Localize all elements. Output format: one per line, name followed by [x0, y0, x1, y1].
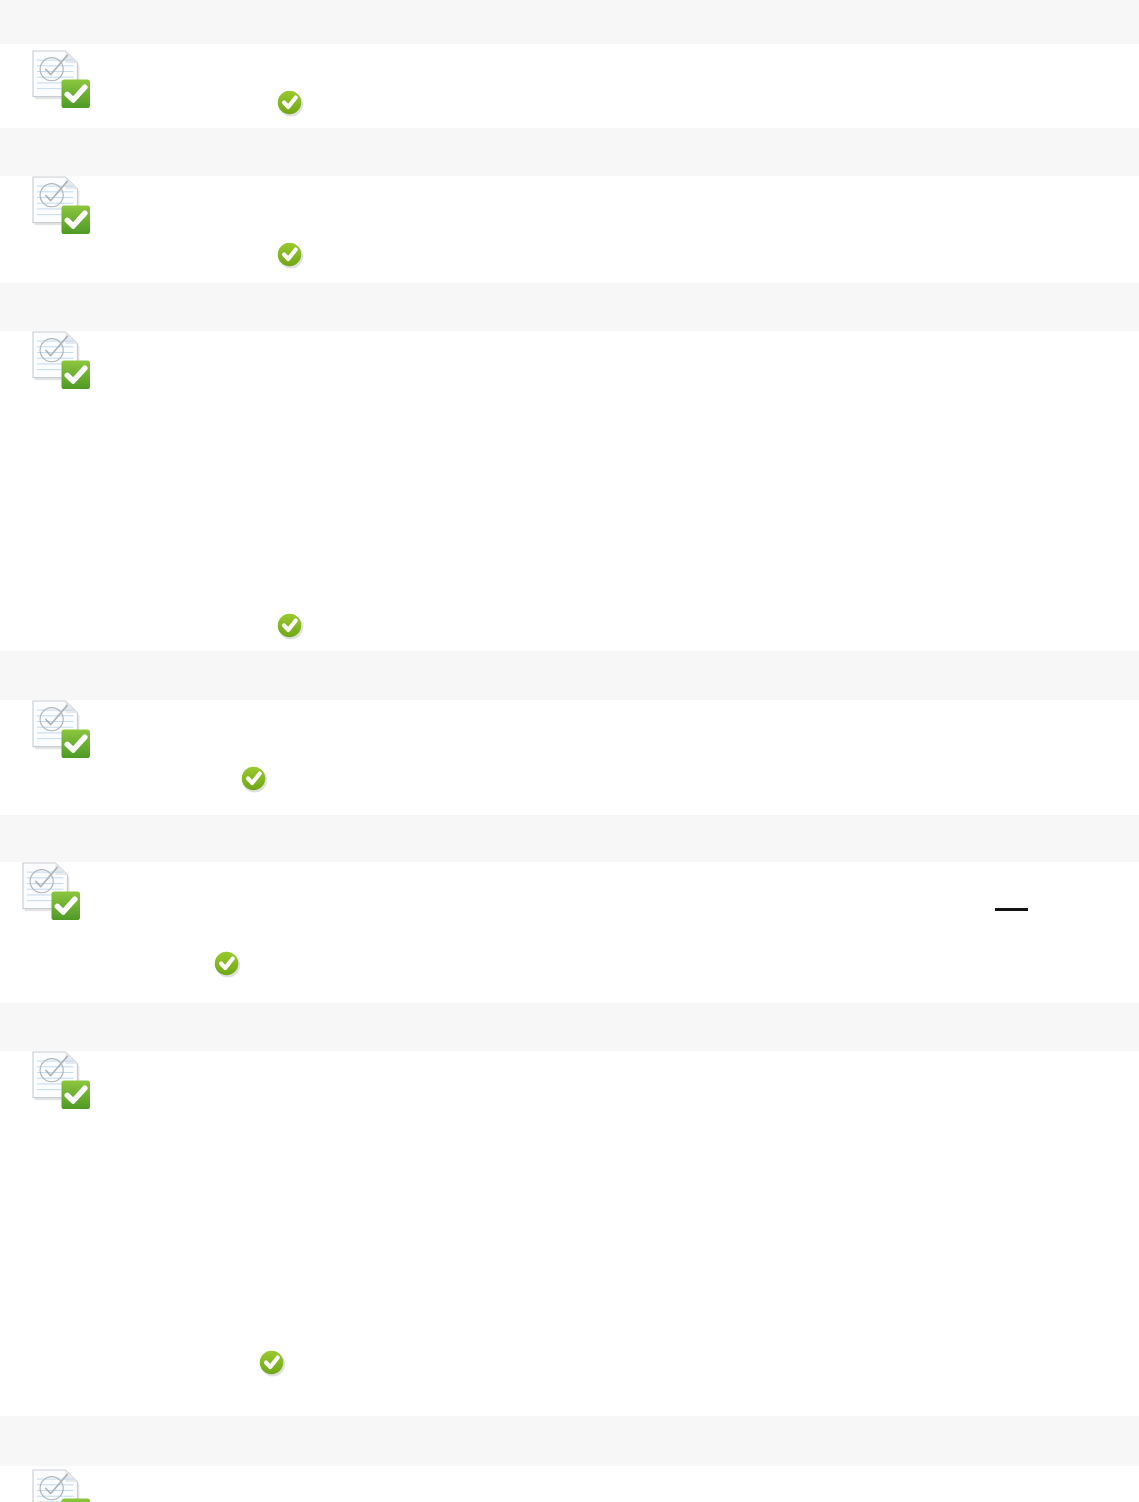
button[interactable]: Open form [33, 177, 90, 234]
button[interactable]: Completed [277, 90, 302, 115]
button[interactable]: Open form [23, 863, 80, 920]
button[interactable]: Completed [259, 1350, 284, 1375]
button[interactable]: Completed [277, 613, 302, 638]
button[interactable]: Completed [241, 766, 266, 791]
button[interactable]: Open form [33, 332, 90, 389]
button[interactable]: Open form [33, 701, 90, 758]
button[interactable]: Completed [214, 951, 239, 976]
button[interactable]: Completed [277, 242, 302, 267]
button[interactable]: Open form [33, 51, 90, 108]
button[interactable]: Open form [33, 1470, 90, 1502]
button[interactable]: Open form [33, 1052, 90, 1109]
